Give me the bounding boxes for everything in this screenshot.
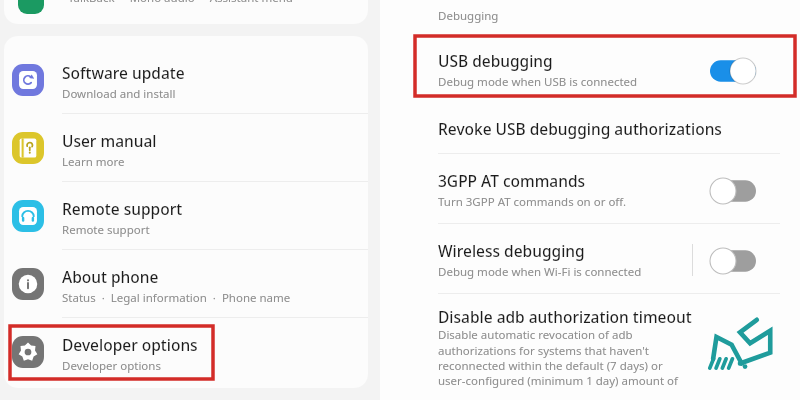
staticText: Disable adb authorization timeout	[438, 306, 692, 327]
staticText: 3GPP AT commands	[438, 170, 586, 191]
button[interactable]: Software update	[4, 46, 368, 114]
staticText: Learn more	[62, 154, 125, 170]
button[interactable]: 3GPP AT commands	[380, 162, 800, 224]
staticText: Wireless debugging	[438, 240, 585, 261]
staticText: Revoke USB debugging authorizations	[438, 118, 722, 139]
staticText: User manual	[62, 130, 157, 151]
staticText: Debug mode when USB is connected	[438, 74, 638, 90]
staticText: Remote support	[62, 222, 150, 238]
button[interactable]: Wireless debugging	[380, 232, 800, 294]
staticText: Disable automatic revocation of adb auth…	[438, 327, 708, 388]
button[interactable]: Wireless debugging toggle	[710, 248, 756, 274]
staticText: Developer options	[62, 334, 198, 355]
button[interactable]: User manual	[4, 114, 368, 182]
staticText: USB debugging	[438, 50, 553, 71]
button[interactable]: TalkBack · Mono audio · Assistant menu	[4, 0, 368, 24]
staticText: Status · Legal information · Phone name	[62, 290, 291, 306]
button[interactable]: Revoke USB debugging authorizations	[380, 106, 800, 154]
button[interactable]: USB debugging	[380, 42, 800, 104]
button[interactable]: USB debugging toggle	[710, 58, 756, 84]
button[interactable]: About phone	[4, 250, 368, 318]
other: hardwarecenter.ir watermark	[698, 312, 782, 390]
button[interactable]: Developer options	[4, 318, 368, 386]
staticText: Debugging	[438, 8, 499, 24]
staticText: Turn 3GPP AT commands on or off.	[438, 194, 627, 210]
button[interactable]: 3GPP AT commands toggle	[710, 178, 756, 204]
button[interactable]: Remote support	[4, 182, 368, 250]
staticText: Remote support	[62, 198, 183, 219]
staticText: Debug mode when Wi-Fi is connected	[438, 264, 642, 280]
staticText: TalkBack · Mono audio · Assistant menu	[68, 0, 293, 6]
staticText: About phone	[62, 266, 159, 287]
button[interactable]: Disable adb authorization timeout	[380, 302, 800, 400]
staticText: Download and install	[62, 86, 176, 102]
staticText: Developer options	[62, 358, 161, 374]
staticText: Software update	[62, 62, 185, 83]
